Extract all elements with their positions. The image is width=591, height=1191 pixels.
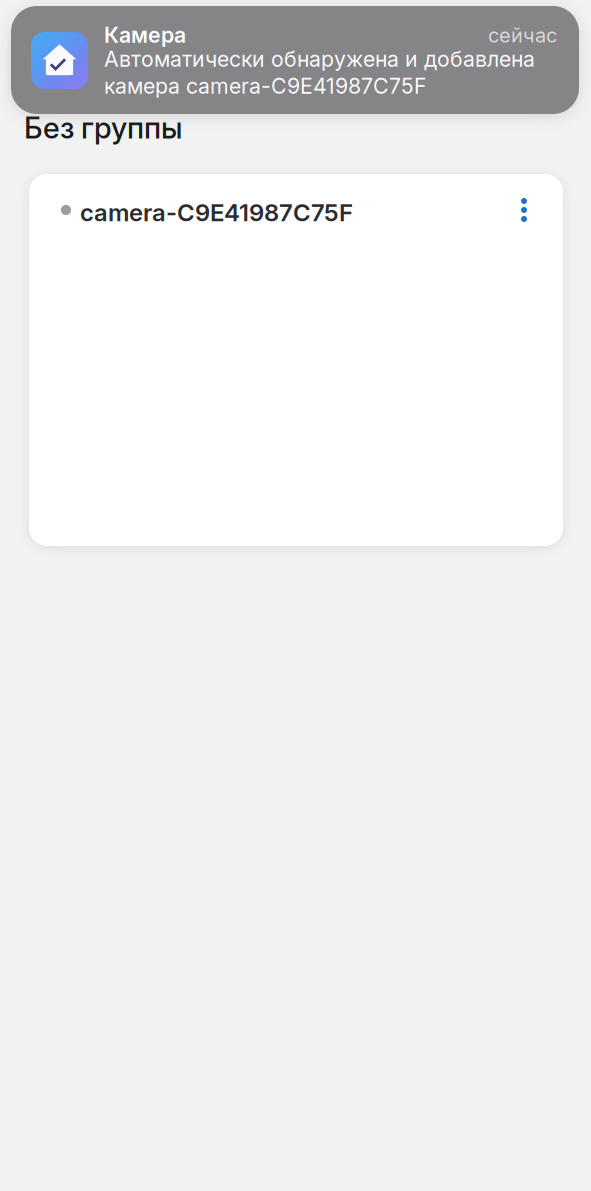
staticText: камера camera-C9E41987C75F <box>104 73 427 99</box>
staticText: Без группы <box>24 110 183 145</box>
button[interactable]: Device options <box>501 184 547 236</box>
staticText: Автоматически обнаружена и добавлена <box>104 46 535 72</box>
staticText: Камера <box>104 22 186 48</box>
staticText: camera-C9E41987C75F <box>80 198 353 227</box>
staticText: сейчас <box>488 23 557 47</box>
